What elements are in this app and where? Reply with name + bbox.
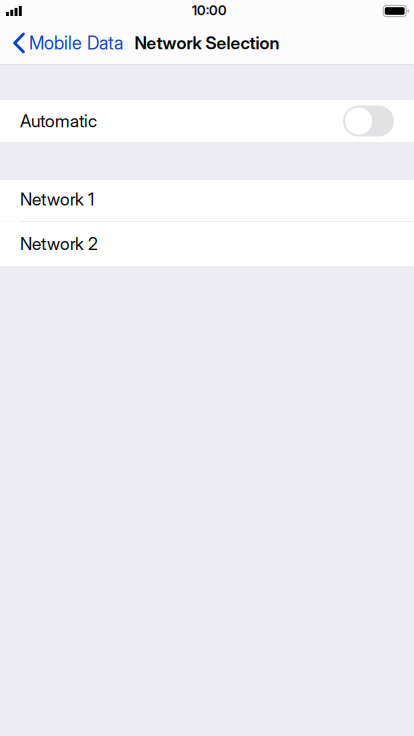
button[interactable]: Network 2 [0, 222, 414, 266]
staticText: Automatic [20, 110, 97, 131]
staticText: 10:00 [192, 2, 227, 18]
staticText: Network 2 [20, 233, 98, 254]
button[interactable]: Network 1 [0, 180, 414, 221]
staticText: Network Selection [134, 32, 279, 53]
button[interactable]: Back to Mobile Data [0, 22, 127, 64]
staticText: Mobile Data [29, 32, 123, 54]
staticText: Network 1 [20, 189, 94, 210]
